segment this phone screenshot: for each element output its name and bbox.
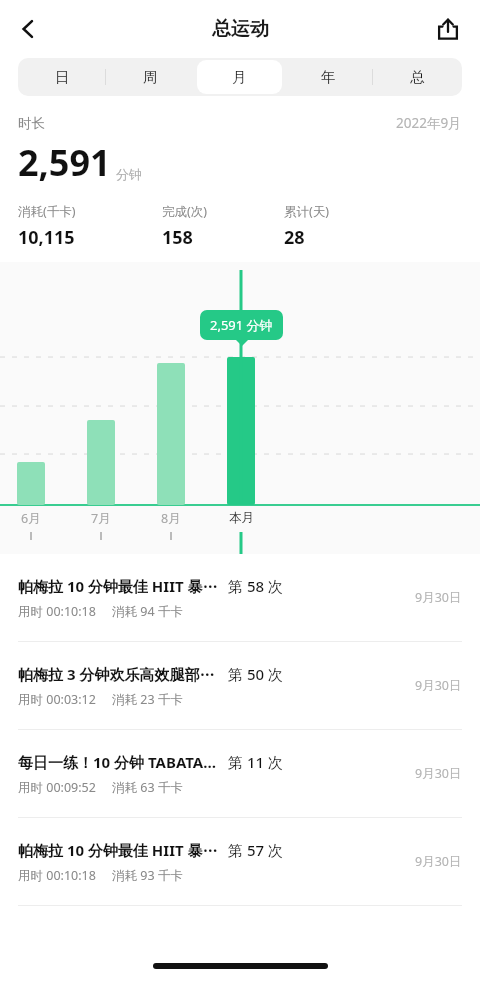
staticText: 累计(天): [284, 203, 330, 220]
button[interactable]: 年: [286, 60, 371, 94]
staticText: 总运动: [212, 17, 269, 41]
staticText: 周: [143, 68, 158, 86]
staticText: 10,115: [18, 225, 75, 250]
staticText: 月: [232, 68, 247, 86]
staticText: 帕梅拉 3 分钟欢乐高效腿部训练…: [18, 664, 218, 684]
button[interactable]: 帕梅拉 3 分钟欢乐高效腿部训练…: [0, 642, 480, 729]
staticText: 时长: [18, 115, 45, 132]
staticText: 9月30日: [415, 853, 462, 870]
button[interactable]: 日: [20, 60, 104, 94]
staticText: 第 11 次: [228, 752, 283, 772]
staticText: 第 50 次: [228, 664, 283, 684]
button[interactable]: 总: [375, 60, 460, 94]
staticText: 用时 00:10:18: [18, 867, 96, 884]
staticText: 用时 00:10:18: [18, 603, 96, 620]
button[interactable]: 帕梅拉 10 分钟最佳 HIIT 暴汗合…: [0, 554, 480, 641]
staticText: 帕梅拉 10 分钟最佳 HIIT 暴汗合…: [18, 576, 218, 596]
staticText: 完成(次): [162, 203, 208, 220]
staticText: 9月30日: [415, 677, 462, 694]
staticText: 用时 00:09:52: [18, 779, 96, 796]
staticText: 158: [162, 225, 193, 250]
staticText: 消耗 93 千卡: [112, 867, 183, 884]
button[interactable]: Share: [424, 5, 472, 53]
staticText: 分钟: [116, 166, 142, 182]
staticText: 6月: [21, 510, 41, 527]
staticText: 本月: [229, 510, 254, 526]
staticText: 9月30日: [415, 765, 462, 782]
staticText: 消耗 94 千卡: [112, 603, 183, 620]
staticText: 2,591: [18, 138, 111, 187]
staticText: 第 57 次: [228, 840, 283, 860]
button[interactable]: 月: [197, 60, 282, 94]
staticText: 日: [55, 68, 70, 86]
staticText: 消耗 63 千卡: [112, 779, 183, 796]
staticText: 第 58 次: [228, 576, 283, 596]
staticText: 2,591 分钟: [210, 316, 273, 334]
button[interactable]: 周: [108, 60, 193, 94]
staticText: 消耗(千卡): [18, 203, 76, 220]
staticText: 28: [284, 225, 305, 250]
staticText: 帕梅拉 10 分钟最佳 HIIT 暴汗合…: [18, 840, 218, 860]
staticText: 年: [321, 68, 336, 86]
staticText: 每日一练！10 分钟 TABATA 减内…: [18, 752, 218, 772]
staticText: 消耗 23 千卡: [112, 691, 183, 708]
staticText: 总: [410, 68, 425, 86]
staticText: 2022年9月: [396, 114, 462, 132]
button[interactable]: 每日一练！10 分钟 TABATA 减内…: [0, 730, 480, 817]
button[interactable]: 帕梅拉 10 分钟最佳 HIIT 暴汗合…: [0, 818, 480, 905]
staticText: 7月: [91, 510, 111, 527]
button[interactable]: Back: [4, 5, 52, 53]
staticText: 9月30日: [415, 589, 462, 606]
staticText: 8月: [161, 510, 181, 527]
staticText: 用时 00:03:12: [18, 691, 96, 708]
